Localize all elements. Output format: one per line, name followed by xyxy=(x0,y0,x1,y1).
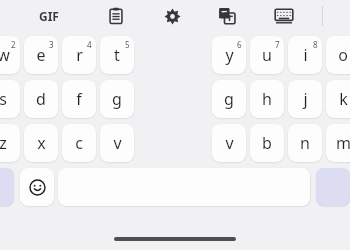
button[interactable]: g xyxy=(100,80,134,118)
staticText: m xyxy=(336,132,350,154)
button[interactable]: c xyxy=(62,124,96,162)
button[interactable]: i xyxy=(288,36,322,74)
button[interactable]: s xyxy=(0,80,20,118)
button[interactable]: Keyboard layout xyxy=(271,4,297,28)
button[interactable]: h xyxy=(250,80,284,118)
staticText: c xyxy=(75,132,83,154)
button[interactable]: v xyxy=(100,124,134,162)
button[interactable]: o xyxy=(326,36,350,74)
staticText: 4 xyxy=(87,39,92,50)
staticText: u xyxy=(262,44,272,66)
button[interactable]: GIF xyxy=(34,4,64,28)
button[interactable]: e xyxy=(24,36,58,74)
button[interactable]: x xyxy=(24,124,58,162)
button[interactable]: v xyxy=(212,124,246,162)
staticText: 7 xyxy=(275,39,280,50)
button[interactable]: k xyxy=(326,80,350,118)
button[interactable]: Symbols xyxy=(0,168,14,206)
button[interactable]: Translate xyxy=(215,4,239,28)
staticText: h xyxy=(262,88,272,110)
staticText: r xyxy=(76,44,83,66)
staticText: z xyxy=(0,132,7,154)
staticText: b xyxy=(262,132,272,154)
staticText: x xyxy=(37,132,46,154)
staticText: GIF xyxy=(39,8,59,24)
staticText: n xyxy=(300,132,310,154)
staticText: s xyxy=(0,88,7,110)
button[interactable]: y xyxy=(212,36,246,74)
staticText: o xyxy=(338,44,348,66)
staticText: j xyxy=(303,88,308,110)
staticText: f xyxy=(76,88,82,110)
button[interactable]: n xyxy=(288,124,322,162)
button[interactable]: b xyxy=(250,124,284,162)
button[interactable]: u xyxy=(250,36,284,74)
button[interactable]: w xyxy=(0,36,20,74)
staticText: w xyxy=(0,44,10,66)
staticText: i xyxy=(303,44,308,66)
button[interactable]: Clipboard xyxy=(104,4,128,28)
button[interactable]: Enter xyxy=(316,168,350,206)
button[interactable]: t xyxy=(100,36,134,74)
staticText: g xyxy=(112,88,122,110)
staticText: t xyxy=(114,44,120,66)
button[interactable]: f xyxy=(62,80,96,118)
staticText: y xyxy=(225,44,234,66)
staticText: e xyxy=(36,44,46,66)
staticText: k xyxy=(339,88,348,110)
button[interactable]: Emoji xyxy=(20,168,54,206)
staticText: 3 xyxy=(49,39,54,50)
button[interactable]: d xyxy=(24,80,58,118)
staticText: v xyxy=(113,132,122,154)
button[interactable]: z xyxy=(0,124,20,162)
staticText: v xyxy=(225,132,234,154)
button[interactable]: m xyxy=(326,124,350,162)
button[interactable]: Settings xyxy=(160,4,184,28)
staticText: 2 xyxy=(11,39,16,50)
staticText: 8 xyxy=(313,39,318,50)
button[interactable]: j xyxy=(288,80,322,118)
staticText: d xyxy=(36,88,46,110)
staticText: 5 xyxy=(125,39,130,50)
button[interactable]: r xyxy=(62,36,96,74)
button[interactable]: g xyxy=(212,80,246,118)
staticText: 6 xyxy=(237,39,242,50)
staticText: g xyxy=(224,88,234,110)
